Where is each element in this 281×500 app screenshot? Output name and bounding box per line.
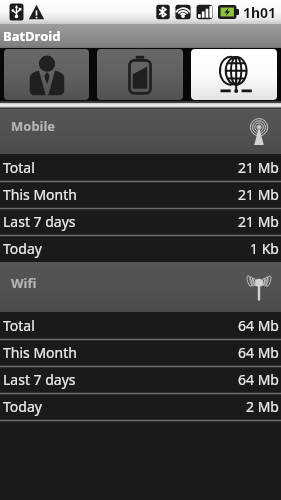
button[interactable]: Today bbox=[0, 393, 281, 420]
staticText: 64 Mb bbox=[238, 370, 279, 389]
button[interactable]: Today bbox=[0, 235, 281, 262]
button[interactable]: Network tab bbox=[191, 49, 277, 100]
staticText: 2 Mb bbox=[246, 397, 279, 416]
button[interactable]: Total bbox=[0, 154, 281, 181]
button[interactable]: This Month bbox=[0, 339, 281, 366]
staticText: 64 Mb bbox=[238, 343, 279, 362]
staticText: Total bbox=[3, 316, 35, 335]
staticText: Today bbox=[3, 239, 42, 258]
staticText: Last 7 days bbox=[3, 370, 76, 389]
staticText: Wifi bbox=[11, 274, 37, 292]
button[interactable]: Profile tab bbox=[4, 49, 89, 100]
button[interactable]: Battery tab bbox=[97, 49, 183, 100]
staticText: 21 Mb bbox=[238, 185, 279, 204]
staticText: 64 Mb bbox=[238, 316, 279, 335]
staticText: Mobile bbox=[11, 117, 56, 135]
staticText: Total bbox=[3, 158, 35, 177]
staticText: 1 Kb bbox=[250, 239, 279, 258]
button[interactable]: Last 7 days bbox=[0, 208, 281, 235]
staticText: This Month bbox=[3, 185, 77, 204]
staticText: BatDroid bbox=[3, 27, 61, 45]
staticText: 21 Mb bbox=[238, 158, 279, 177]
button[interactable]: This Month bbox=[0, 181, 281, 208]
staticText: 1h01 bbox=[243, 3, 277, 22]
button[interactable]: Total bbox=[0, 312, 281, 339]
staticText: Today bbox=[3, 397, 42, 416]
staticText: 21 Mb bbox=[238, 212, 279, 231]
button[interactable]: Last 7 days bbox=[0, 366, 281, 393]
staticText: Last 7 days bbox=[3, 212, 76, 231]
staticText: This Month bbox=[3, 343, 77, 362]
